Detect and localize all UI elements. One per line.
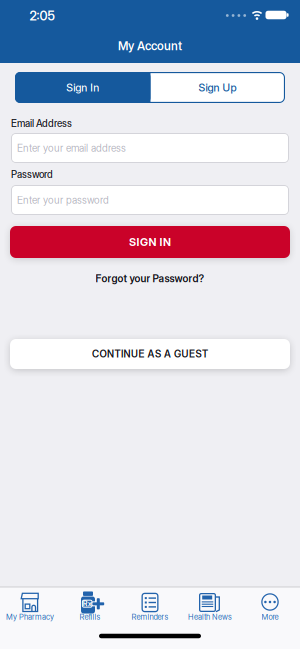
staticText: Enter your password (17, 194, 109, 206)
staticText: Health News (188, 612, 232, 622)
button[interactable]: Refills (60, 587, 120, 627)
button[interactable]: Password (11, 185, 289, 215)
staticText: Enter your email address (17, 142, 126, 154)
staticText: Reminders (131, 612, 168, 622)
staticText: My Account (118, 39, 182, 53)
staticText: CONTINUE AS A GUEST (92, 348, 208, 360)
staticText: My Pharmacy (6, 612, 54, 622)
button[interactable]: Forgot your Password? (95, 272, 204, 285)
staticText: SIGN IN (129, 235, 171, 249)
staticText: Refills (79, 612, 100, 622)
button[interactable]: More (240, 587, 300, 627)
staticText: Rx (83, 599, 92, 608)
button[interactable]: Email Address (11, 133, 289, 163)
button[interactable]: Reminders (120, 587, 180, 627)
staticText: Sign Up (198, 81, 236, 94)
staticText: Forgot your Password? (95, 272, 204, 285)
button[interactable]: Health News (180, 587, 240, 627)
staticText: Password (11, 169, 53, 180)
staticText: Sign In (66, 81, 99, 94)
staticText: 2:05 (29, 8, 54, 24)
button[interactable]: My Pharmacy (0, 587, 60, 627)
staticText: Email Address (11, 118, 72, 129)
button[interactable]: Sign In (15, 72, 150, 103)
button[interactable]: Sign Up (15, 72, 285, 103)
button[interactable]: SIGN IN (10, 226, 290, 258)
button[interactable]: CONTINUE AS A GUEST (10, 339, 290, 369)
staticText: More (261, 612, 278, 622)
